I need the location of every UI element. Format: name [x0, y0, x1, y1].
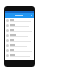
button[interactable] [5, 23, 34, 28]
button[interactable] [5, 53, 34, 58]
button[interactable]: More options [5, 13, 34, 18]
button[interactable] [5, 33, 34, 38]
button[interactable] [5, 38, 34, 43]
button[interactable] [5, 18, 34, 23]
button[interactable] [5, 48, 34, 53]
button[interactable] [5, 43, 34, 48]
button[interactable] [5, 28, 34, 33]
